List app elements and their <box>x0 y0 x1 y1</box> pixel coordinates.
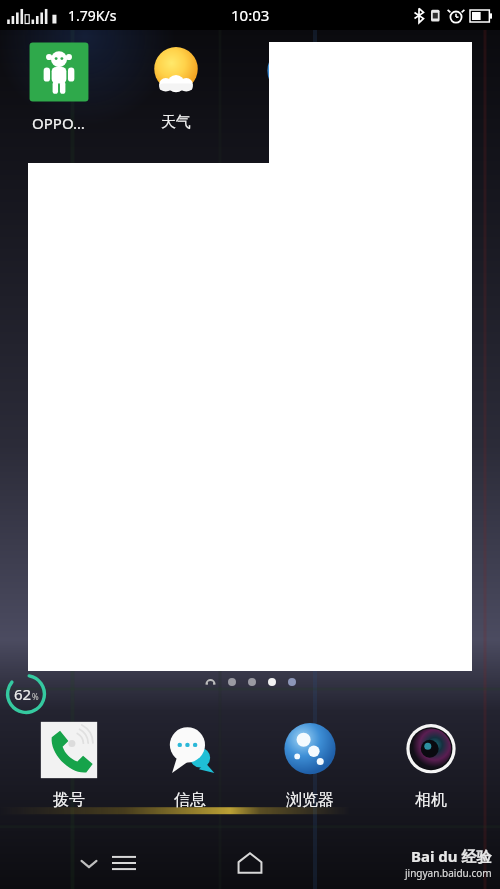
button[interactable] <box>268 678 276 686</box>
button[interactable]: 浏… <box>234 38 351 133</box>
staticText: 10:03 <box>231 5 270 25</box>
staticText: Bai du 经验 <box>411 846 492 866</box>
button[interactable]: 天气 <box>117 38 234 132</box>
button[interactable] <box>248 678 256 686</box>
staticText: 信息 <box>174 790 206 810</box>
button[interactable]: OPPO… <box>0 38 117 133</box>
button[interactable]: Collapse <box>72 846 106 880</box>
button[interactable]: 浏览器 <box>254 718 366 810</box>
button[interactable]: 拨号 <box>13 718 125 810</box>
staticText: jingyan.baidu.com <box>405 866 492 880</box>
button[interactable] <box>288 678 296 686</box>
button[interactable]: Home <box>215 837 285 889</box>
staticText: 62 <box>14 684 32 704</box>
button[interactable]: 相机 <box>375 718 487 810</box>
button[interactable]: Battery 62 percent <box>3 671 49 717</box>
staticText: 浏览器 <box>286 790 334 810</box>
staticText: OPPO… <box>32 113 85 133</box>
staticText: 相机 <box>415 790 447 810</box>
staticText: 拨号 <box>53 790 85 810</box>
button[interactable] <box>228 678 236 686</box>
button[interactable]: 信息 <box>134 718 246 810</box>
button[interactable]: Menu <box>94 837 154 889</box>
staticText: 1.79K/s <box>68 6 117 25</box>
staticText: % <box>32 691 39 702</box>
staticText: 天气 <box>161 113 191 132</box>
